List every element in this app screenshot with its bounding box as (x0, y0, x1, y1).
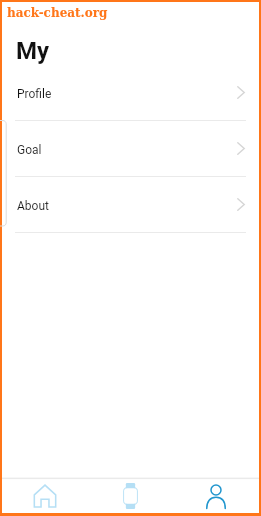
staticText: My (16, 37, 50, 65)
button[interactable]: Home (2, 479, 87, 513)
button[interactable]: About (2, 177, 259, 233)
staticText: Profile (17, 87, 52, 101)
button[interactable]: Goal (2, 121, 259, 177)
button[interactable]: Profile (173, 479, 259, 513)
staticText: hack-cheat.org (7, 6, 108, 20)
button[interactable]: Devices (87, 479, 173, 513)
button[interactable]: Profile (2, 65, 259, 121)
staticText: About (17, 199, 49, 213)
staticText: Goal (17, 143, 42, 157)
